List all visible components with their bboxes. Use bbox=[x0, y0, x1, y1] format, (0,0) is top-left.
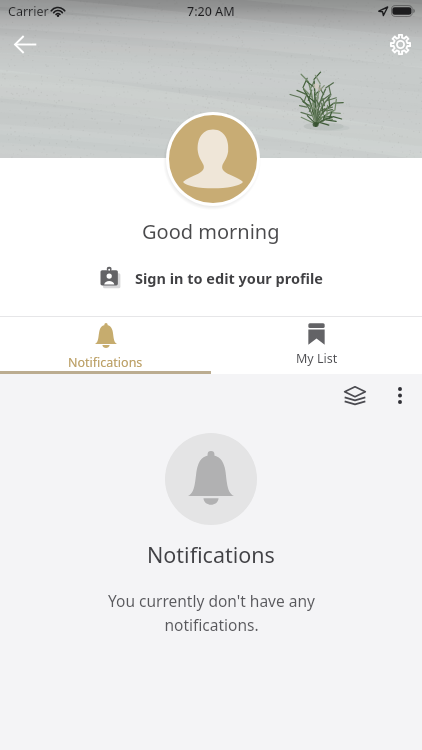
staticText: Sign in to edit your profile bbox=[135, 268, 323, 288]
button[interactable]: Settings bbox=[383, 27, 417, 61]
button[interactable]: Sign in to edit your profile bbox=[91, 261, 331, 294]
staticText: My List bbox=[296, 350, 338, 367]
staticText: 7:20 AM bbox=[187, 3, 235, 20]
staticText: Carrier bbox=[8, 3, 49, 20]
staticText: You currently don't have any notificatio… bbox=[108, 590, 315, 635]
button[interactable]: My List bbox=[211, 316, 422, 374]
button[interactable]: Layers bbox=[335, 375, 375, 415]
button[interactable]: Back bbox=[8, 27, 42, 61]
button[interactable]: Notifications bbox=[0, 316, 211, 374]
staticText: Notifications bbox=[147, 540, 275, 569]
staticText: Notifications bbox=[68, 354, 143, 371]
button[interactable]: More options bbox=[380, 375, 420, 415]
staticText: Good morning bbox=[142, 218, 280, 245]
